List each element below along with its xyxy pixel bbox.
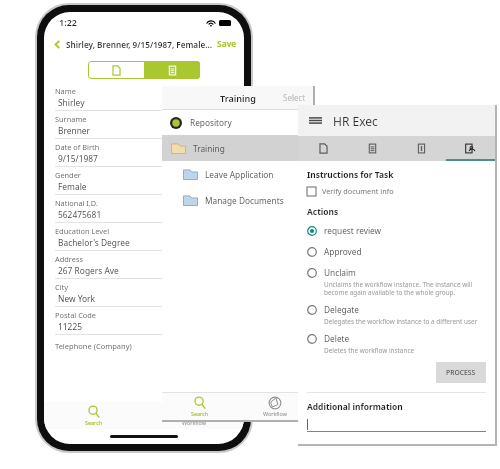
button[interactable]: Repository xyxy=(162,110,313,135)
staticText: 562475681 xyxy=(58,209,102,220)
button[interactable]: Delete xyxy=(307,333,486,362)
staticText: 9/15/1987 xyxy=(58,153,98,164)
staticText: Name xyxy=(55,86,76,96)
staticText: Bachelor's Degree xyxy=(58,237,130,248)
staticText: Education Level xyxy=(55,226,110,236)
staticText: Leave Application xyxy=(205,169,274,180)
staticText: PROCESS xyxy=(446,368,476,377)
staticText: Actions xyxy=(307,206,339,217)
staticText: Postal Code xyxy=(55,310,96,320)
staticText: request review xyxy=(324,225,382,236)
button[interactable]: PROCESS xyxy=(436,362,486,383)
button[interactable]: Save xyxy=(217,38,237,50)
staticText: Unclaim xyxy=(324,267,356,278)
staticText: Approved xyxy=(324,246,362,257)
button[interactable]: Document tab xyxy=(298,136,348,161)
button[interactable]: Back xyxy=(51,38,64,51)
button[interactable]: Training xyxy=(162,135,313,161)
button[interactable]: Approved xyxy=(307,246,486,267)
staticText: Delegate xyxy=(324,304,359,315)
button[interactable]: Select xyxy=(283,92,306,103)
staticText: Workflow xyxy=(263,410,287,417)
staticText: Manage Documents xyxy=(205,195,284,206)
staticText: Instructions for Task xyxy=(307,169,394,180)
staticText: Brenner xyxy=(58,125,91,136)
staticText: Search xyxy=(85,419,103,426)
staticText: Gender xyxy=(55,170,81,180)
button[interactable]: Attachment tab xyxy=(397,136,446,161)
staticText: Telephone (Company) xyxy=(55,341,132,351)
staticText: City xyxy=(55,282,69,292)
button[interactable]: Task tab xyxy=(446,136,495,161)
staticText: Shirley, Brenner, 9/15/1987, Female,... xyxy=(66,39,214,50)
staticText: Unclaims the workflow instance. The inst… xyxy=(324,280,480,297)
staticText: HR Exec xyxy=(333,113,378,129)
staticText: New York xyxy=(58,293,96,304)
button[interactable]: Manage Documents xyxy=(162,187,313,213)
staticText: National I.D. xyxy=(55,198,98,208)
button[interactable]: Document view xyxy=(88,61,144,79)
button[interactable]: Workflow xyxy=(144,402,244,429)
staticText: Address xyxy=(55,254,83,264)
button[interactable]: Delegate xyxy=(307,304,486,333)
staticText: Date of Birth xyxy=(55,142,100,152)
staticText: Deletes the workflow instance xyxy=(324,346,415,355)
button[interactable]: Form view xyxy=(144,61,200,79)
button[interactable]: Menu xyxy=(309,114,322,127)
staticText: Save xyxy=(217,38,237,50)
staticText: Training xyxy=(220,92,256,104)
staticText: Female xyxy=(58,181,87,192)
button[interactable]: Leave Application xyxy=(162,161,313,187)
staticText: Repository xyxy=(190,117,232,128)
staticText: Search xyxy=(191,410,209,417)
button[interactable]: Search xyxy=(162,393,237,420)
staticText: 267 Rogers Ave xyxy=(58,265,119,276)
staticText: Verify document info xyxy=(322,186,394,196)
staticText: 1:22 xyxy=(59,16,77,28)
staticText: Shirley xyxy=(58,97,85,108)
staticText: Select xyxy=(283,92,306,103)
staticText: Delegates the workflow instance to a dif… xyxy=(324,317,478,326)
button[interactable]: Search xyxy=(44,402,144,429)
button[interactable]: Workflow xyxy=(237,393,313,420)
staticText: 11225 xyxy=(58,321,82,332)
button[interactable]: Form tab xyxy=(348,136,397,161)
button[interactable]: Unclaim xyxy=(307,267,486,304)
staticText: Additional information xyxy=(307,401,403,412)
staticText: Workflow xyxy=(182,419,206,426)
button[interactable]: request review xyxy=(307,225,486,246)
staticText: Training xyxy=(193,143,225,154)
button[interactable]: Verify document info xyxy=(307,186,394,196)
staticText: Surname xyxy=(55,114,87,124)
staticText: Delete xyxy=(324,333,350,344)
